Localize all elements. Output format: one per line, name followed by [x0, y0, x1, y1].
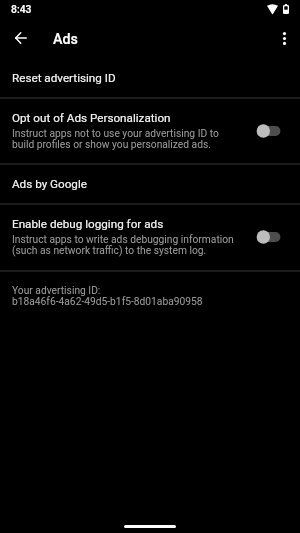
button[interactable]: Navigate up [8, 25, 34, 51]
staticText: Your advertising ID: b18a46f6-4a62-49d5-… [12, 284, 203, 307]
staticText: Opt out of Ads Personalization [12, 111, 171, 125]
staticText: Ads [53, 31, 78, 48]
button[interactable]: More options [272, 26, 296, 50]
staticText: Instruct apps to write ads debugging inf… [12, 233, 234, 256]
staticText: Enable debug logging for ads [12, 217, 164, 231]
staticText: Instruct apps not to use your advertisin… [12, 127, 219, 150]
button[interactable]: Opt out of Ads Personalization [0, 98, 300, 163]
button[interactable]: Opt out of Ads Personalization, off [256, 122, 286, 140]
button[interactable]: Enable debug logging for ads [0, 204, 300, 269]
staticText: 8:43 [11, 3, 32, 15]
staticText: Ads by Google [12, 177, 87, 191]
staticText: Reset advertising ID [12, 71, 116, 85]
button[interactable]: Reset advertising ID [0, 60, 300, 97]
button[interactable]: Enable debug logging for ads, off [256, 228, 286, 246]
